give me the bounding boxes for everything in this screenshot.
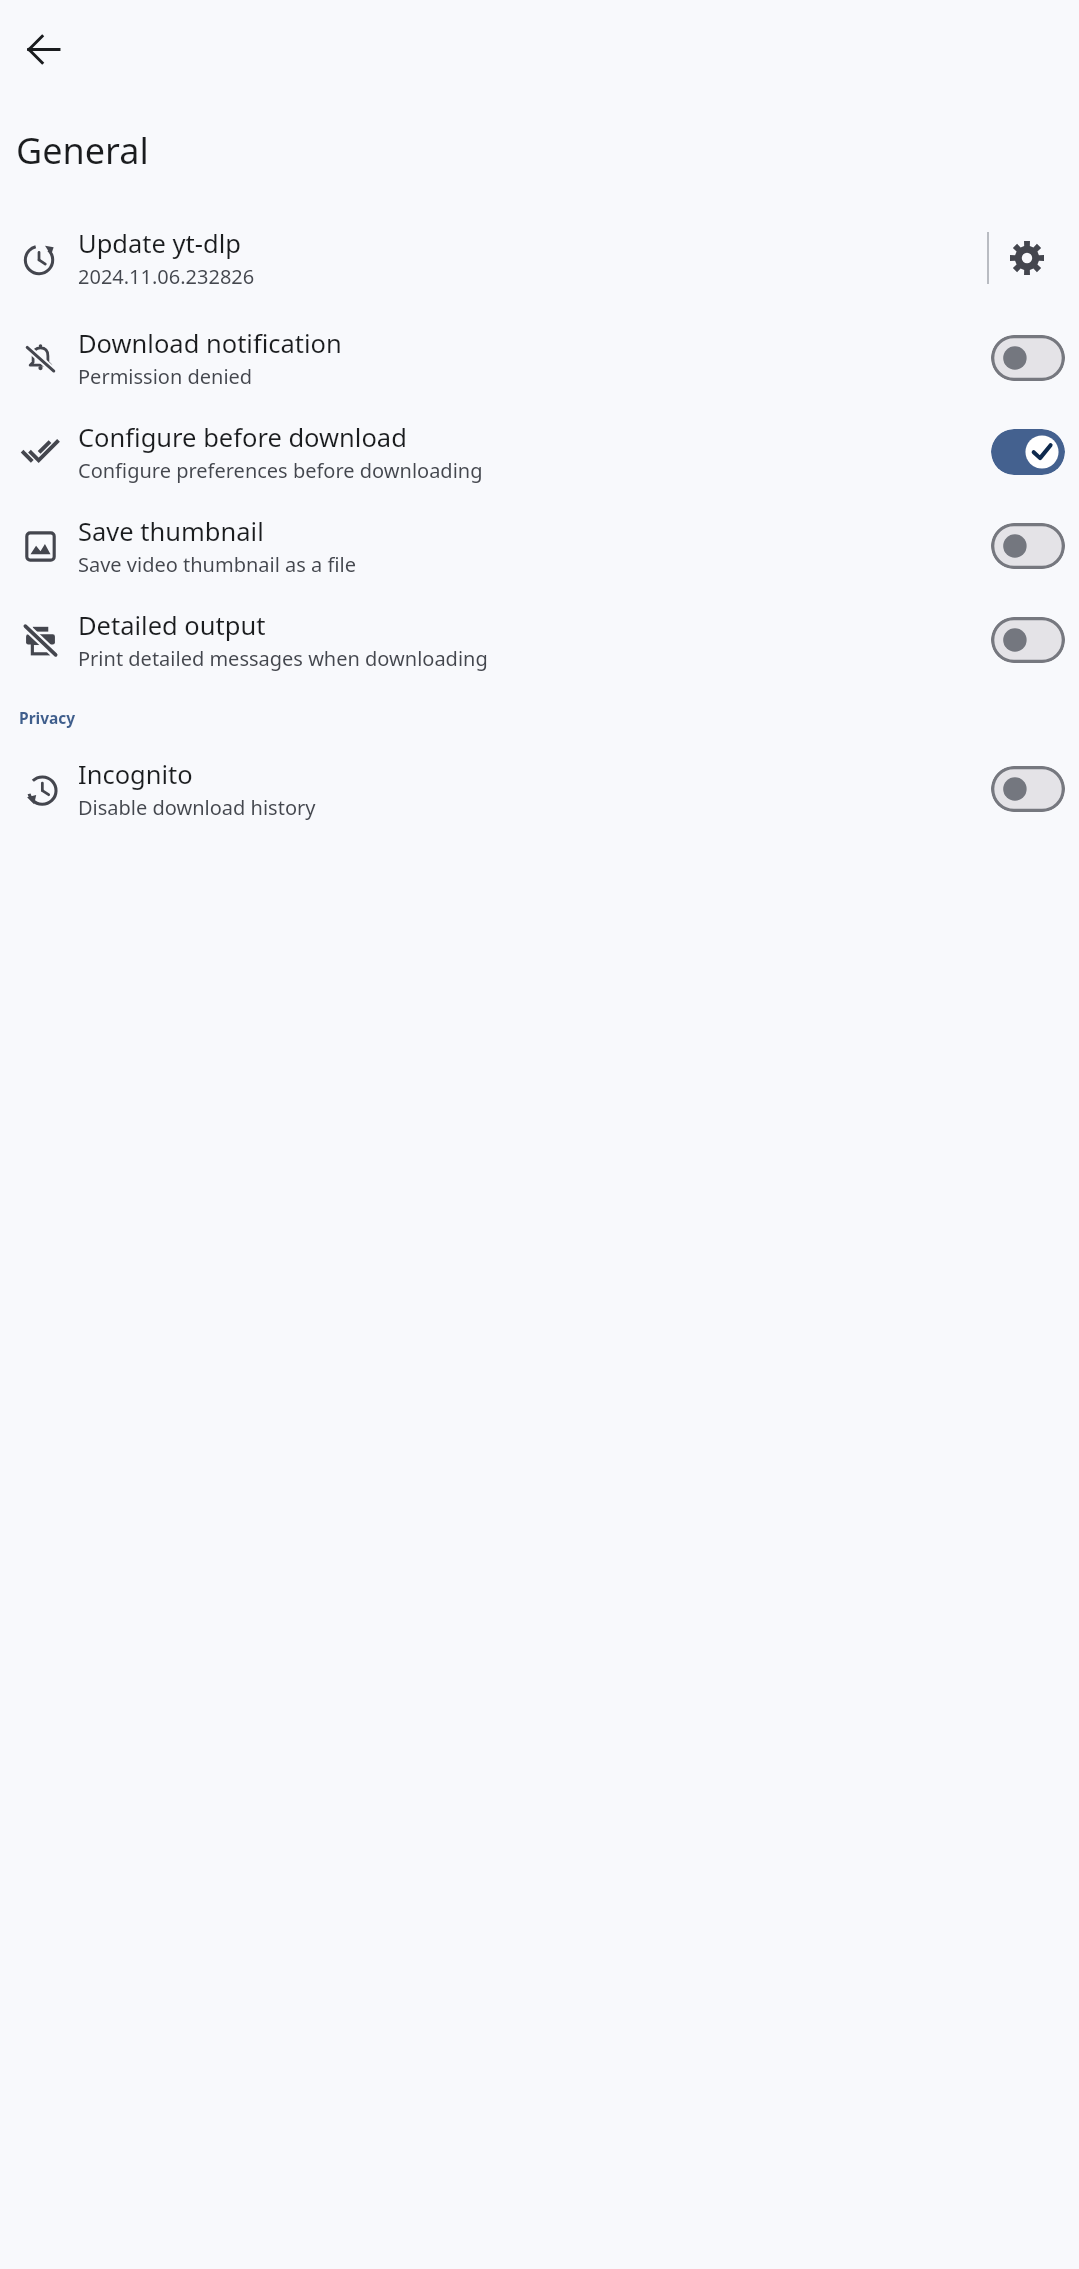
button[interactable]: Update yt-dlp <box>0 205 1079 311</box>
button[interactable]: Toggle off <box>991 617 1065 663</box>
staticText: Print detailed messages when downloading <box>78 645 488 672</box>
staticText: Disable download history <box>78 794 316 821</box>
staticText: Permission denied <box>78 363 253 390</box>
button[interactable]: Save thumbnail <box>0 499 1079 593</box>
staticText: Configure before download <box>78 420 407 455</box>
button[interactable]: Toggle off <box>991 766 1065 812</box>
staticText: Download notification <box>78 326 342 361</box>
staticText: Detailed output <box>78 608 266 643</box>
staticText: Save thumbnail <box>78 514 264 549</box>
button[interactable]: Detailed output <box>0 593 1079 687</box>
staticText: 2024.11.06.232826 <box>78 263 255 290</box>
button[interactable]: Toggle off <box>991 335 1065 381</box>
staticText: Incognito <box>78 757 193 792</box>
button[interactable]: Update settings <box>989 220 1065 296</box>
staticText: Privacy <box>19 707 76 728</box>
staticText: General <box>16 126 149 175</box>
button[interactable]: Incognito <box>0 742 1079 836</box>
button[interactable]: Back <box>10 16 76 82</box>
button[interactable]: Configure before download <box>0 405 1079 499</box>
button[interactable]: Toggle on <box>991 429 1065 475</box>
staticText: Update yt-dlp <box>78 226 241 261</box>
button[interactable]: Toggle off <box>991 523 1065 569</box>
staticText: Configure preferences before downloading <box>78 457 483 484</box>
staticText: Save video thumbnail as a file <box>78 551 356 578</box>
button[interactable]: Download notification <box>0 311 1079 405</box>
